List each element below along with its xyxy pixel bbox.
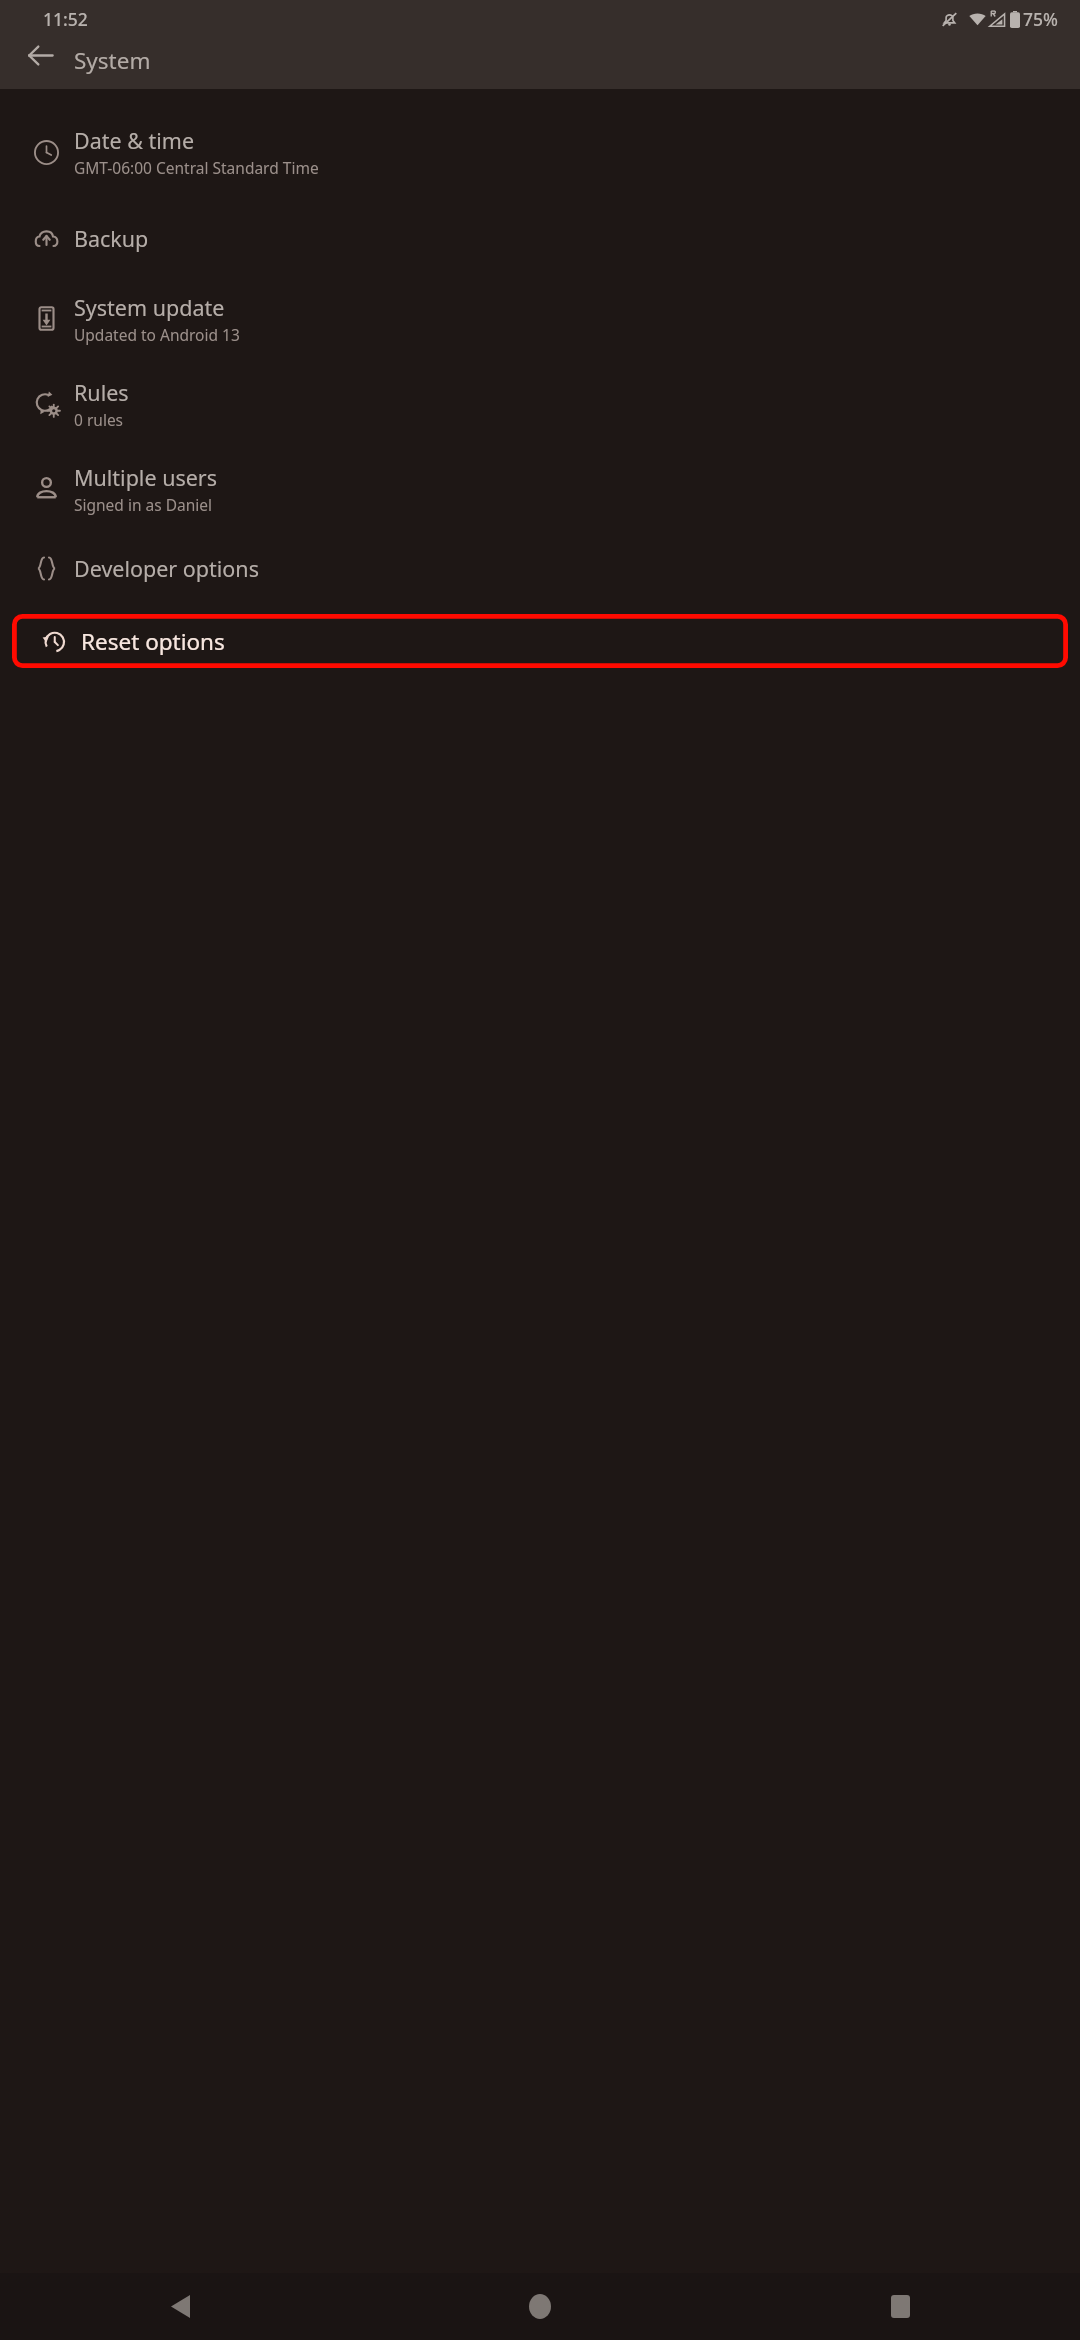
button[interactable]: Multiple users <box>0 446 1080 531</box>
button[interactable]: Recent apps <box>720 2273 1080 2340</box>
staticText: 11:52 <box>43 7 88 31</box>
staticText: 0 rules <box>74 409 124 430</box>
button[interactable]: Reset options <box>12 614 1068 668</box>
button[interactable]: Developer options <box>0 531 1080 606</box>
staticText: Rules <box>74 378 129 407</box>
staticText: Backup <box>74 224 149 253</box>
staticText: System <box>74 45 151 76</box>
staticText: Developer options <box>74 554 259 583</box>
staticText: 75% <box>1023 7 1058 31</box>
staticText: Date & time <box>74 126 195 155</box>
staticText: Signed in as Daniel <box>74 494 213 515</box>
staticText: GMT-06:00 Central Standard Time <box>74 157 319 178</box>
button[interactable]: Date & time <box>0 103 1080 201</box>
button[interactable]: Back <box>8 23 72 87</box>
button[interactable]: Backup <box>0 201 1080 276</box>
staticText: Multiple users <box>74 463 218 492</box>
staticText: Reset options <box>81 626 225 657</box>
button[interactable]: System update <box>0 276 1080 361</box>
button[interactable]: Back <box>0 2273 360 2340</box>
button[interactable]: Rules <box>0 361 1080 446</box>
button[interactable]: Home <box>360 2273 720 2340</box>
staticText: System update <box>74 293 225 322</box>
staticText: Updated to Android 13 <box>74 324 240 345</box>
